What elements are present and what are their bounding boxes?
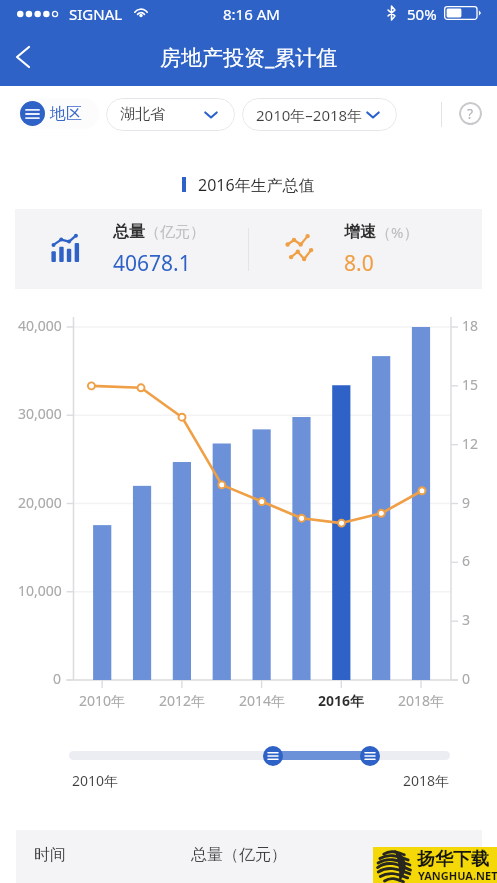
button[interactable]: 2010年–2018年 bbox=[242, 98, 397, 131]
staticText: 2010年–2018年 bbox=[256, 105, 363, 125]
staticText: 12 bbox=[462, 434, 479, 453]
button[interactable]: 湖北省 bbox=[106, 98, 235, 131]
button[interactable]: 时间 bbox=[16, 830, 482, 883]
staticText: 40678.1 bbox=[113, 249, 191, 278]
staticText: 2012年 bbox=[159, 691, 206, 710]
staticText: 湖北省 bbox=[120, 105, 165, 124]
staticText: 50% bbox=[407, 4, 437, 24]
staticText: （亿元） bbox=[145, 223, 205, 242]
staticText: 总量（亿元） bbox=[191, 845, 287, 865]
staticText: 8.0 bbox=[344, 249, 374, 278]
staticText: 2016年 bbox=[318, 691, 365, 710]
staticText: 18 bbox=[462, 316, 479, 335]
button[interactable]: Back bbox=[3, 37, 43, 77]
staticText: 10,000 bbox=[18, 581, 62, 600]
staticText: 2010年 bbox=[72, 771, 119, 790]
staticText: 40,000 bbox=[18, 316, 62, 335]
staticText: 时间 bbox=[34, 845, 66, 865]
staticText: YANGHUA.NET bbox=[418, 868, 497, 883]
staticText: 总量 bbox=[113, 222, 145, 242]
staticText: 15 bbox=[462, 375, 479, 394]
staticText: 2014年 bbox=[239, 691, 286, 710]
staticText: 2010年 bbox=[79, 691, 126, 710]
staticText: 20,000 bbox=[18, 493, 62, 512]
button[interactable]: Range handle bbox=[360, 746, 380, 766]
staticText: 9 bbox=[462, 493, 471, 512]
staticText: 增速 bbox=[344, 222, 376, 242]
button[interactable]: Range handle bbox=[263, 746, 283, 766]
staticText: 0 bbox=[462, 669, 471, 688]
staticText: 扬华下载 bbox=[417, 848, 489, 871]
staticText: 6 bbox=[462, 551, 471, 570]
staticText: 地区 bbox=[50, 104, 82, 124]
button[interactable]: Help bbox=[459, 102, 482, 125]
staticText: 2016年生产总值 bbox=[198, 174, 315, 194]
staticText: ? bbox=[467, 104, 474, 123]
staticText: 8:16 AM bbox=[223, 4, 280, 24]
staticText: （%） bbox=[376, 222, 419, 242]
staticText: SIGNAL bbox=[69, 4, 123, 24]
staticText: 2018年 bbox=[403, 771, 450, 790]
staticText: 2018年 bbox=[398, 691, 445, 710]
staticText: 30,000 bbox=[18, 404, 62, 423]
staticText: 房地产投资_累计值 bbox=[160, 43, 338, 72]
staticText: 3 bbox=[462, 610, 471, 629]
staticText: 0 bbox=[53, 669, 62, 688]
button[interactable]: 地区 bbox=[16, 98, 99, 129]
